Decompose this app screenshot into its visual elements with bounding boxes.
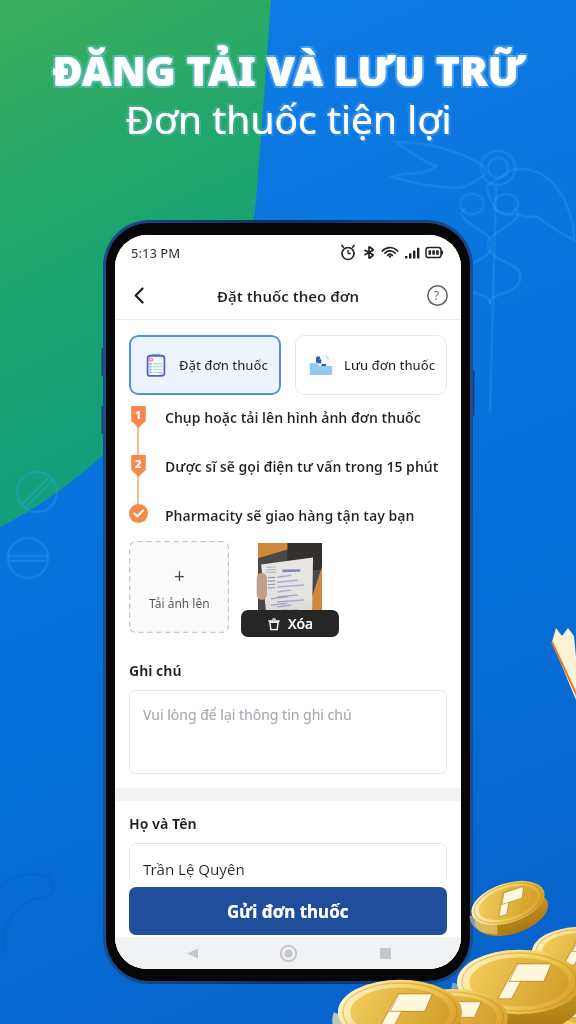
button[interactable]: Help (421, 279, 453, 311)
staticText: Chụp hoặc tải lên hình ảnh đơn thuốc (165, 408, 421, 427)
staticText: ĐĂNG TẢI VÀ LƯU TRỮ (50, 40, 523, 96)
staticText: Ghi chú (129, 661, 182, 680)
staticText: Dược sĩ sẽ gọi điện tư vấn trong 15 phút (165, 457, 439, 476)
staticText: 2 (135, 456, 142, 471)
staticText: Xóa (288, 614, 314, 633)
staticText: Gửi đơn thuốc (227, 900, 349, 923)
staticText: Đơn thuốc tiện lợi (127, 94, 454, 147)
button[interactable]: Đặt đơn thuốc (129, 335, 281, 395)
staticText: ? (434, 287, 440, 303)
staticText: 1 (135, 407, 142, 422)
staticText: Vui lòng để lại thông tin ghi chú (143, 705, 352, 724)
button[interactable] (243, 541, 337, 633)
staticText: 5:13 PM (131, 244, 181, 262)
staticText: + (174, 563, 185, 589)
button[interactable]: Back (172, 937, 212, 969)
button[interactable]: Trần Lệ Quyên (129, 843, 447, 895)
staticText: Trần Lệ Quyên (143, 859, 245, 879)
button[interactable]: Back (121, 277, 157, 313)
staticText: ĐĂNG TẢI VÀ LƯU TRỮ (50, 44, 523, 100)
button[interactable]: + (129, 541, 229, 633)
staticText: ĐĂNG TẢI VÀ LƯU TRỮ (54, 44, 527, 100)
staticText: ĐĂNG TẢI VÀ LƯU TRỮ (52, 42, 525, 98)
staticText: Tải ảnh lên (149, 595, 210, 611)
staticText: Đơn thuốc tiện lợi (125, 92, 452, 145)
staticText: Đơn thuốc tiện lợi (123, 90, 450, 143)
button[interactable]: Lưu đơn thuốc (295, 335, 447, 395)
staticText: Đặt thuốc theo đơn (217, 286, 360, 306)
button[interactable]: Recents (365, 937, 405, 969)
staticText: Đặt đơn thuốc (179, 356, 268, 374)
button[interactable]: Gửi đơn thuốc (129, 887, 447, 935)
staticText: ĐĂNG TẢI VÀ LƯU TRỮ (54, 40, 527, 96)
button[interactable]: Xóa (241, 610, 339, 637)
staticText: Lưu đơn thuốc (344, 356, 436, 374)
button[interactable]: Home (268, 937, 308, 969)
staticText: Pharmacity sẽ giao hàng tận tay bạn (165, 506, 415, 525)
staticText: Họ và Tên (129, 814, 197, 833)
button[interactable]: Vui lòng để lại thông tin ghi chú (129, 690, 447, 774)
